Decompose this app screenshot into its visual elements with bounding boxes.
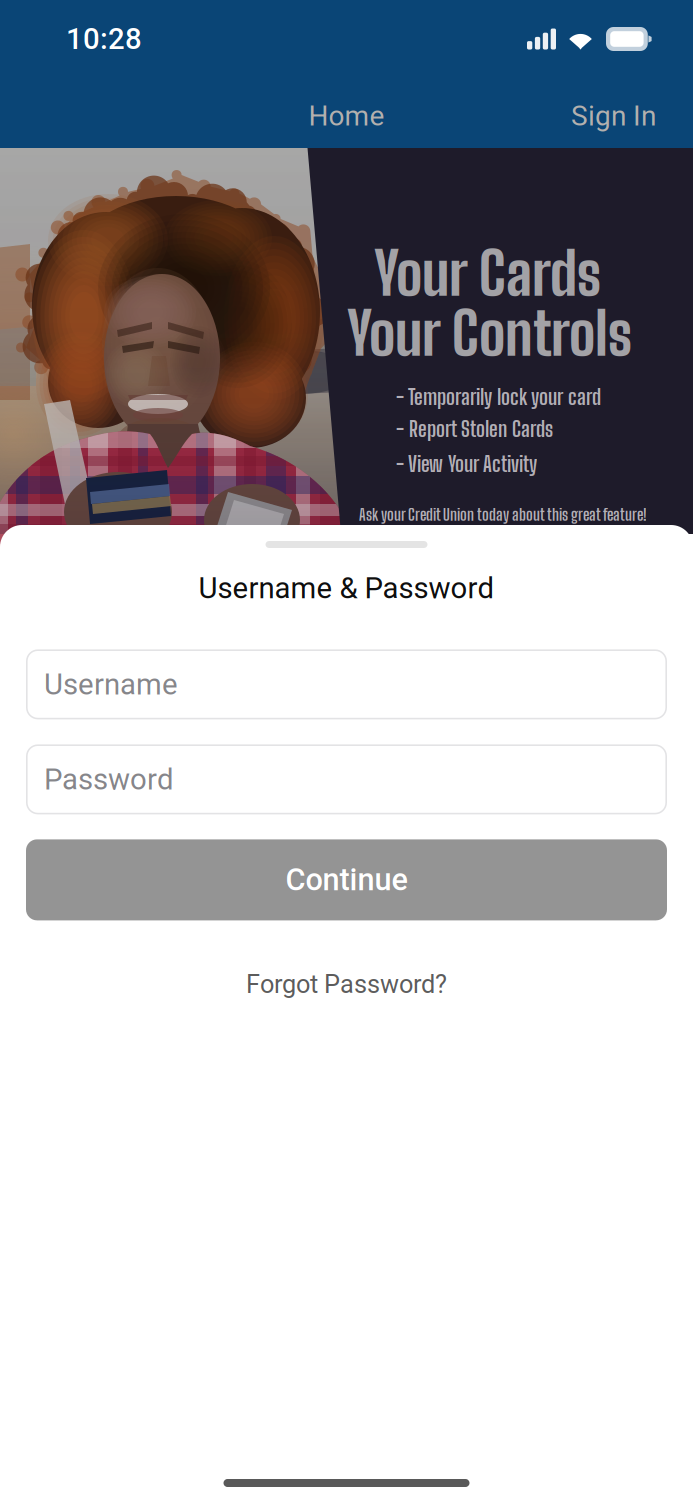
staticText: Sign In — [571, 100, 656, 132]
button[interactable]: Password — [26, 744, 667, 814]
staticText: Your Controls — [347, 298, 632, 368]
staticText: - View Your Activity — [396, 451, 537, 476]
staticText: Your Cards — [374, 238, 601, 308]
button[interactable]: Username — [26, 649, 667, 719]
staticText: Username — [44, 667, 178, 702]
button[interactable]: Sign In — [557, 92, 670, 140]
staticText: Forgot Password? — [246, 969, 447, 999]
staticText: - Temporarily lock your card — [396, 384, 601, 409]
staticText: - Report Stolen Cards — [396, 416, 553, 441]
staticText: Home — [308, 100, 384, 132]
button[interactable]: Forgot Password? — [234, 961, 459, 1007]
staticText: Continue — [285, 862, 407, 898]
button[interactable]: Continue — [26, 839, 667, 920]
staticText: Password — [44, 762, 174, 797]
button[interactable]: Home — [294, 92, 398, 140]
staticText: 10:28 — [66, 22, 142, 56]
staticText: Ask your Credit Union today about this g… — [359, 505, 647, 524]
staticText: Username & Password — [198, 571, 494, 605]
